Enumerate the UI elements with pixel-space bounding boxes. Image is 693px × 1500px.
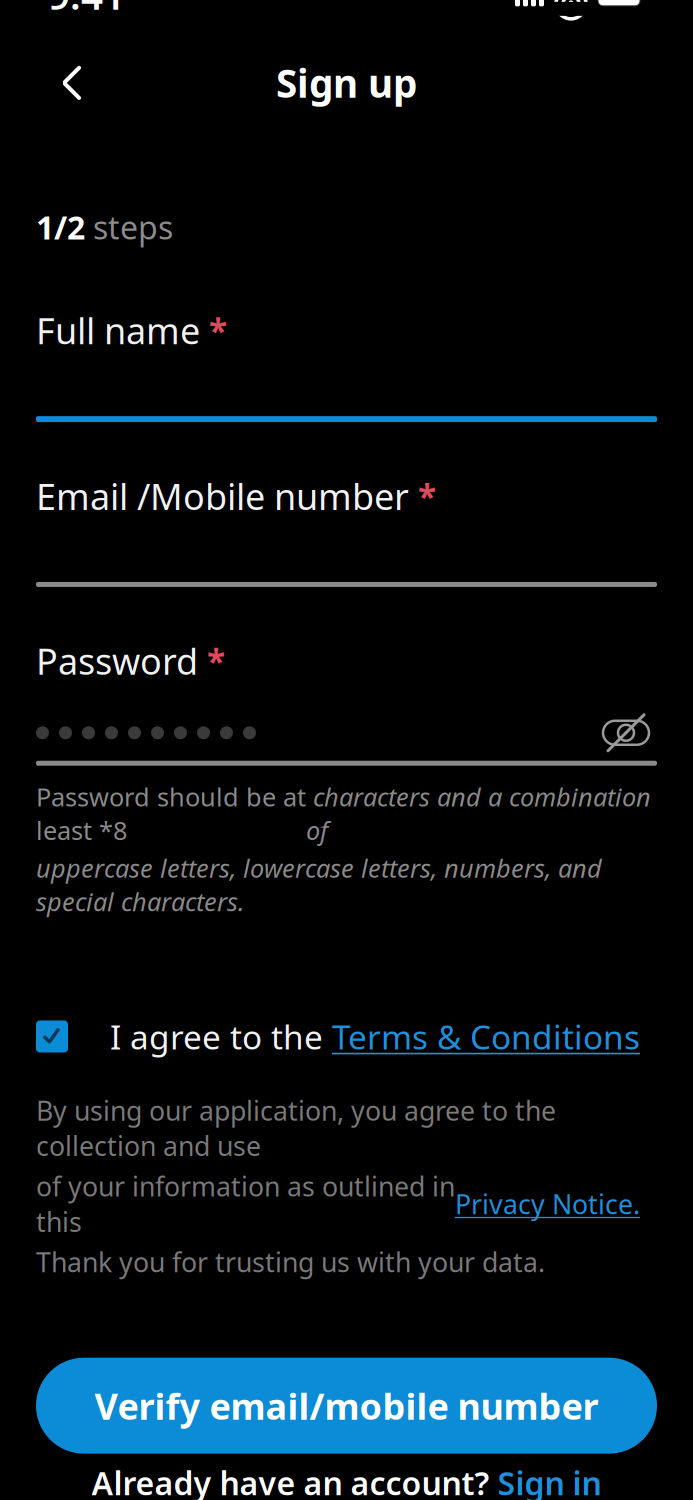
staticText: Email /Mobile number <box>36 472 409 520</box>
button[interactable]: Privacy Notice. <box>455 1186 640 1221</box>
staticText: Password <box>36 637 198 685</box>
staticText: 9:41 <box>48 0 125 20</box>
staticText: * <box>409 474 436 518</box>
staticText: By using our application, you agree to t… <box>36 1093 556 1163</box>
staticText: Sign in <box>497 1462 601 1500</box>
staticText: of your information as outlined in this <box>36 1168 455 1239</box>
staticText: Verify email/mobile number <box>94 1382 598 1430</box>
button[interactable]: Back <box>44 55 100 111</box>
staticText: Already have an account? <box>91 1462 497 1500</box>
staticText: uppercase letters, lowercase letters, nu… <box>36 851 602 918</box>
staticText: I agree to the <box>110 1014 332 1059</box>
button[interactable]: Verify email/mobile number <box>36 1358 657 1454</box>
staticText: Full name <box>36 306 200 354</box>
button[interactable]: Already have an account? <box>36 1462 657 1500</box>
staticText: 1/2 <box>36 206 85 248</box>
staticText: steps <box>85 206 173 248</box>
staticText: * <box>198 639 225 683</box>
staticText: characters and a combination of <box>306 780 651 847</box>
staticText: Sign up <box>276 57 417 108</box>
staticText: Terms & Conditions <box>332 1014 640 1059</box>
button[interactable]: I agree to the <box>36 1010 657 1063</box>
staticText: Thank you for trusting us with your data… <box>36 1244 545 1280</box>
staticText: * <box>200 308 227 352</box>
staticText: Password should be at least *8 <box>36 780 306 847</box>
button[interactable]: Show password <box>595 711 657 755</box>
staticText: Privacy Notice. <box>455 1186 640 1221</box>
